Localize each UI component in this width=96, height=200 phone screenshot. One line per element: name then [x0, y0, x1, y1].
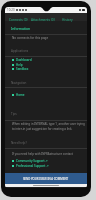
button[interactable]: Sandbox [5, 67, 87, 71]
staticText: Sandbox [16, 67, 29, 71]
button[interactable]: Connects (0) [6, 13, 30, 21]
staticText: Help [16, 63, 23, 67]
staticText: 10:20 [7, 8, 15, 12]
button[interactable]: SEND YOUR ISSUE IN A COMMENT [5, 173, 87, 184]
staticText: Need help? [11, 141, 27, 145]
staticText: Professional Support ↗ [16, 164, 49, 168]
staticText: Dashboard [16, 58, 32, 62]
button[interactable]: Community Support ↗ [5, 159, 87, 163]
staticText: When editing in INTERNAL type 1, another… [12, 122, 86, 131]
staticText: Information [11, 26, 31, 31]
staticText: History [62, 18, 73, 22]
staticText: If you need help with INFRAstructure con… [12, 152, 73, 156]
staticText: Tips [11, 112, 17, 116]
button[interactable]: Attachments (0) [30, 13, 55, 21]
staticText: Applications [11, 49, 29, 53]
staticText: Home [16, 93, 25, 97]
staticText: No connects for this page [12, 36, 49, 40]
staticText: Navigation [11, 81, 27, 85]
staticText: Connects (0) [9, 18, 28, 22]
staticText: SEND YOUR ISSUE IN A COMMENT [23, 177, 69, 181]
button[interactable]: Help [5, 63, 87, 67]
button[interactable]: Dashboard [5, 58, 87, 62]
staticText: Attachments (0) [31, 18, 55, 22]
button[interactable]: Professional Support ↗ [5, 164, 87, 168]
button[interactable]: Home [5, 93, 87, 97]
button[interactable]: History [55, 13, 80, 21]
staticText: Community Support ↗ [16, 159, 48, 163]
